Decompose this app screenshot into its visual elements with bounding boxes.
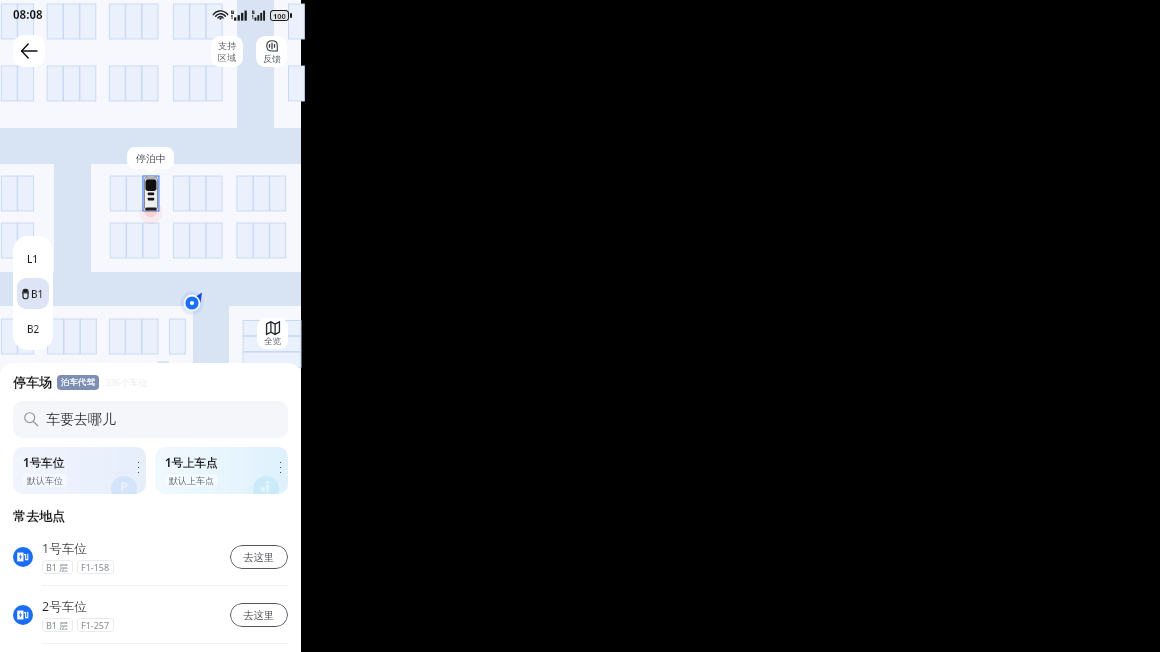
staticText: 默认车位 [27, 475, 63, 486]
staticText: B1 层 [46, 619, 69, 631]
staticText: 默认上车点 [169, 475, 214, 486]
staticText: 常去地点 [13, 508, 65, 524]
staticText: 2号车位 [42, 598, 87, 615]
staticText: B1 层 [46, 561, 69, 573]
staticText: 100 [273, 11, 286, 20]
button[interactable]: Back [13, 35, 45, 67]
staticText: 1号车位 [23, 455, 65, 471]
staticText: 08:08 [13, 7, 43, 23]
button[interactable]: L1 [17, 243, 49, 274]
button[interactable]: 车要去哪儿 [13, 401, 288, 438]
button[interactable]: 去这里 [230, 545, 288, 569]
staticText: 反馈 [263, 53, 281, 64]
staticText: 泊车代驾 [61, 377, 95, 388]
button[interactable]: 去这里 [230, 603, 288, 627]
staticText: F1-158 [81, 561, 110, 573]
staticText: L1 [27, 252, 39, 266]
button[interactable]: P [13, 447, 146, 494]
staticText: 支持 区域 [218, 40, 236, 63]
staticText: B1 [31, 287, 44, 301]
button[interactable]: 2号车位 [0, 586, 301, 643]
staticText: 去这里 [243, 609, 275, 622]
staticText: 1号车位 [42, 540, 87, 557]
staticText: 停车场 [13, 374, 52, 390]
staticText: 停泊中 [136, 152, 166, 165]
button[interactable]: 支持 区域 [211, 36, 243, 67]
button[interactable]: B1 [17, 278, 49, 309]
button[interactable]: B2 [17, 313, 49, 344]
staticText: F1-257 [81, 619, 110, 631]
button[interactable]: 1号车位 [0, 528, 301, 585]
button[interactable]: 全览 [257, 318, 288, 349]
staticText: 336个车位 [105, 376, 148, 388]
button[interactable]: 反馈 [256, 36, 287, 67]
staticText: 去这里 [243, 551, 275, 564]
staticText: 全览 [264, 336, 281, 347]
staticText: P [120, 477, 129, 494]
button[interactable]: 1号上车点 [155, 447, 288, 494]
staticText: 1号上车点 [165, 455, 218, 471]
staticText: B2 [27, 322, 40, 336]
staticText: 车要去哪儿 [46, 411, 116, 429]
